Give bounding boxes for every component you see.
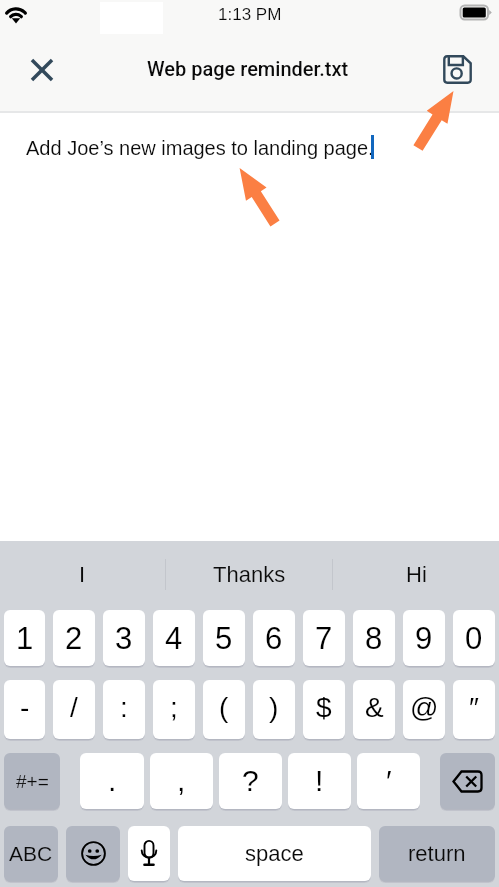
- button[interactable]: /: [53, 680, 95, 739]
- button[interactable]: 2: [53, 610, 95, 666]
- button[interactable]: ;: [153, 680, 195, 739]
- staticText: return: [408, 841, 466, 866]
- button[interactable]: ): [253, 680, 295, 739]
- staticText: (: [219, 692, 229, 723]
- staticText: &: [365, 692, 384, 723]
- staticText: #+=: [16, 771, 49, 792]
- button[interactable]: return: [379, 826, 495, 881]
- staticText: !: [315, 764, 324, 798]
- staticText: ABC: [9, 842, 53, 865]
- button[interactable]: !: [288, 753, 351, 809]
- button[interactable]: 4: [153, 610, 195, 666]
- staticText: 1: [16, 621, 34, 656]
- button[interactable]: ABC: [4, 826, 58, 881]
- staticText: @: [410, 692, 439, 723]
- staticText: ?: [242, 764, 259, 798]
- staticText: 8: [365, 621, 383, 656]
- staticText: :: [120, 692, 128, 723]
- button[interactable]: ′: [357, 753, 420, 809]
- button[interactable]: Close: [19, 47, 65, 93]
- button[interactable]: Backspace: [440, 753, 495, 809]
- staticText: ): [269, 692, 279, 723]
- staticText: ″: [469, 692, 479, 723]
- button[interactable]: I: [0, 541, 165, 608]
- staticText: 9: [415, 621, 433, 656]
- button[interactable]: 5: [203, 610, 245, 666]
- staticText: 3: [115, 621, 133, 656]
- button[interactable]: Emoji: [66, 826, 120, 881]
- staticText: ′: [386, 764, 392, 798]
- button[interactable]: (: [203, 680, 245, 739]
- button[interactable]: 0: [453, 610, 495, 666]
- button[interactable]: 3: [103, 610, 145, 666]
- button[interactable]: .: [80, 753, 144, 809]
- button[interactable]: 8: [353, 610, 395, 666]
- button[interactable]: @: [403, 680, 445, 739]
- button[interactable]: Hi: [333, 541, 499, 608]
- button[interactable]: &: [353, 680, 395, 739]
- staticText: 1:13 PM: [218, 5, 282, 24]
- staticText: 7: [315, 621, 333, 656]
- staticText: space: [245, 841, 304, 866]
- staticText: /: [70, 692, 78, 723]
- button[interactable]: ″: [453, 680, 495, 739]
- staticText: ;: [170, 692, 178, 723]
- button[interactable]: ?: [219, 753, 282, 809]
- button[interactable]: 9: [403, 610, 445, 666]
- button[interactable]: Save: [434, 46, 480, 92]
- staticText: 5: [215, 621, 233, 656]
- staticText: ,: [177, 764, 186, 798]
- staticText: 4: [165, 621, 183, 656]
- staticText: 6: [265, 621, 283, 656]
- button[interactable]: $: [303, 680, 345, 739]
- button[interactable]: 6: [253, 610, 295, 666]
- staticText: $: [316, 692, 332, 723]
- staticText: -: [20, 692, 30, 723]
- button[interactable]: Add Joe’s new images to landing page.: [0, 113, 499, 541]
- button[interactable]: Thanks: [166, 541, 332, 608]
- staticText: 0: [465, 621, 483, 656]
- staticText: Add Joe’s new images to landing page.: [26, 137, 374, 159]
- button[interactable]: #+=: [4, 753, 60, 809]
- staticText: .: [108, 764, 117, 798]
- button[interactable]: :: [103, 680, 145, 739]
- button[interactable]: ,: [150, 753, 213, 809]
- button[interactable]: -: [4, 680, 45, 739]
- button[interactable]: 7: [303, 610, 345, 666]
- staticText: I: [79, 562, 86, 587]
- button[interactable]: 1: [4, 610, 45, 666]
- staticText: Hi: [406, 562, 427, 587]
- staticText: Web page reminder.txt: [147, 57, 349, 80]
- staticText: Thanks: [213, 562, 286, 587]
- button[interactable]: space: [178, 826, 371, 881]
- button[interactable]: Dictation: [128, 826, 170, 881]
- staticText: 2: [65, 621, 83, 656]
